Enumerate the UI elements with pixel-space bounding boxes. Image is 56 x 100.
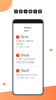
staticText: Encrypted end to end for your eyes only. <box>16 73 36 79</box>
staticText: Features <box>24 26 32 32</box>
button[interactable]: Alerts <box>16 54 40 64</box>
button[interactable]: Vault <box>16 69 40 79</box>
staticText: Alerts <box>21 54 30 57</box>
staticText: Know the moment something changes. <box>16 58 35 64</box>
button[interactable]: Sync <box>16 35 40 48</box>
staticText: Vault <box>21 69 29 72</box>
staticText: Keep all devices current in real time. <box>16 40 33 48</box>
staticText: Sync <box>21 35 29 39</box>
